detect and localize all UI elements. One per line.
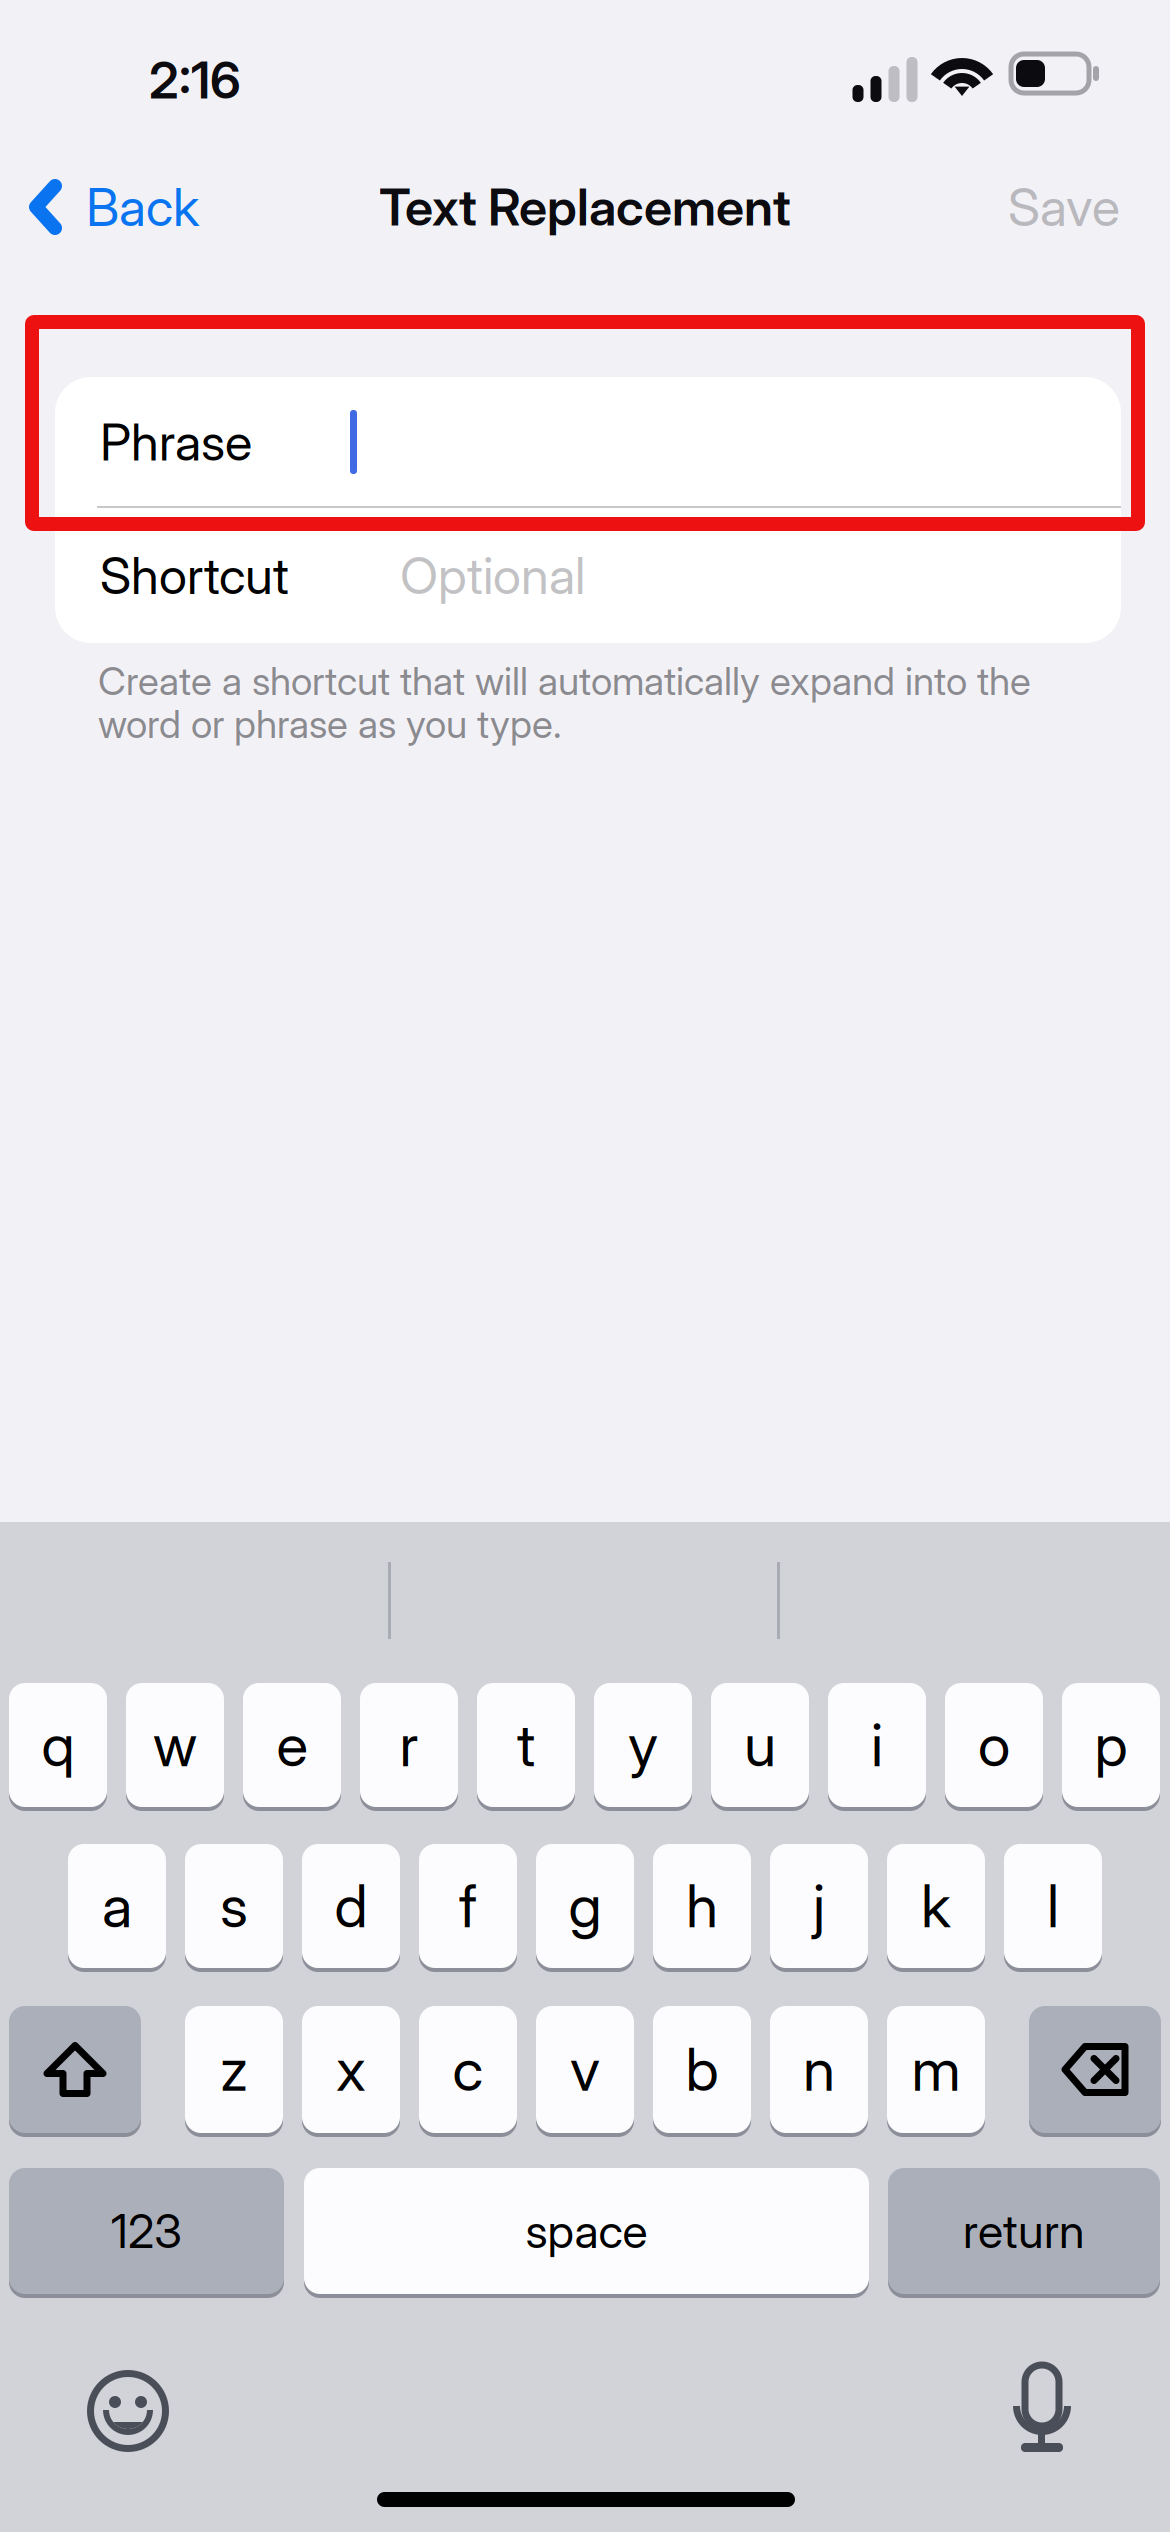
staticText: v [570,2034,600,2105]
button[interactable]: w [126,1683,224,1811]
button[interactable]: x [302,2006,400,2137]
staticText: o [978,1709,1010,1780]
button[interactable]: b [653,2006,751,2137]
button[interactable]: Dictation [1013,2365,1071,2452]
staticText: m [911,2034,960,2105]
staticText: y [628,1709,658,1780]
staticText: Phrase [100,411,252,473]
button[interactable]: a [68,1844,166,1972]
button[interactable]: n [770,2006,868,2137]
staticText: a [102,1870,132,1941]
staticText: 123 [111,2203,182,2259]
button[interactable]: j [770,1844,868,1972]
staticText: i [871,1709,883,1780]
staticText: b [685,2034,718,2105]
button[interactable]: c [419,2006,517,2137]
button[interactable]: p [1062,1683,1160,1811]
button[interactable]: h [653,1844,751,1972]
button[interactable]: return [888,2168,1160,2298]
staticText: n [803,2034,835,2105]
staticText: l [1047,1870,1059,1941]
staticText: q [41,1709,74,1780]
staticText: f [459,1870,477,1941]
button[interactable]: d [302,1844,400,1972]
button[interactable]: 123 [9,2168,284,2298]
button[interactable]: Shift [9,2006,141,2137]
button[interactable]: Emoji keyboard [87,2370,169,2452]
staticText: d [334,1870,367,1941]
button[interactable]: e [243,1683,341,1811]
button[interactable]: y [594,1683,692,1811]
button[interactable]: s [185,1844,283,1972]
button[interactable]: r [360,1683,458,1811]
staticText: return [963,2203,1085,2259]
button[interactable]: Save [930,176,1120,238]
button[interactable]: f [419,1844,517,1972]
staticText: Text Replacement [379,176,791,238]
staticText: j [813,1870,825,1941]
button[interactable]: v [536,2006,634,2137]
staticText: Optional [400,545,585,606]
button[interactable]: Back [29,172,249,242]
button[interactable]: Phrase [55,377,1121,507]
staticText: c [452,2034,483,2105]
button[interactable]: u [711,1683,809,1811]
button[interactable]: o [945,1683,1043,1811]
button[interactable]: g [536,1844,634,1972]
staticText: g [568,1870,601,1941]
staticText: Save [1008,175,1120,238]
button[interactable]: Delete [1029,2006,1161,2137]
staticText: k [921,1870,951,1941]
staticText: r [399,1709,418,1780]
staticText: e [276,1709,307,1780]
staticText: t [517,1709,535,1780]
button[interactable]: m [887,2006,985,2137]
button[interactable]: l [1004,1844,1102,1972]
staticText: s [220,1870,248,1941]
staticText: Back [86,175,199,238]
staticText: u [744,1709,776,1780]
button[interactable]: t [477,1683,575,1811]
button[interactable]: z [185,2006,283,2137]
button[interactable]: Shortcut [55,508,1121,643]
staticText: z [220,2034,248,2105]
button[interactable]: k [887,1844,985,1972]
staticText: w [153,1709,197,1780]
staticText: space [525,2203,647,2259]
button[interactable]: i [828,1683,926,1811]
staticText: h [686,1870,718,1941]
staticText: x [336,2034,366,2105]
button[interactable]: q [9,1683,107,1811]
staticText: Create a shortcut that will automaticall… [98,658,1031,704]
staticText: p [1094,1709,1127,1780]
staticText: Shortcut [100,545,289,606]
button[interactable]: space [304,2168,869,2298]
staticText: word or phrase as you type. [98,701,561,747]
staticText: 2:16 [149,49,241,111]
